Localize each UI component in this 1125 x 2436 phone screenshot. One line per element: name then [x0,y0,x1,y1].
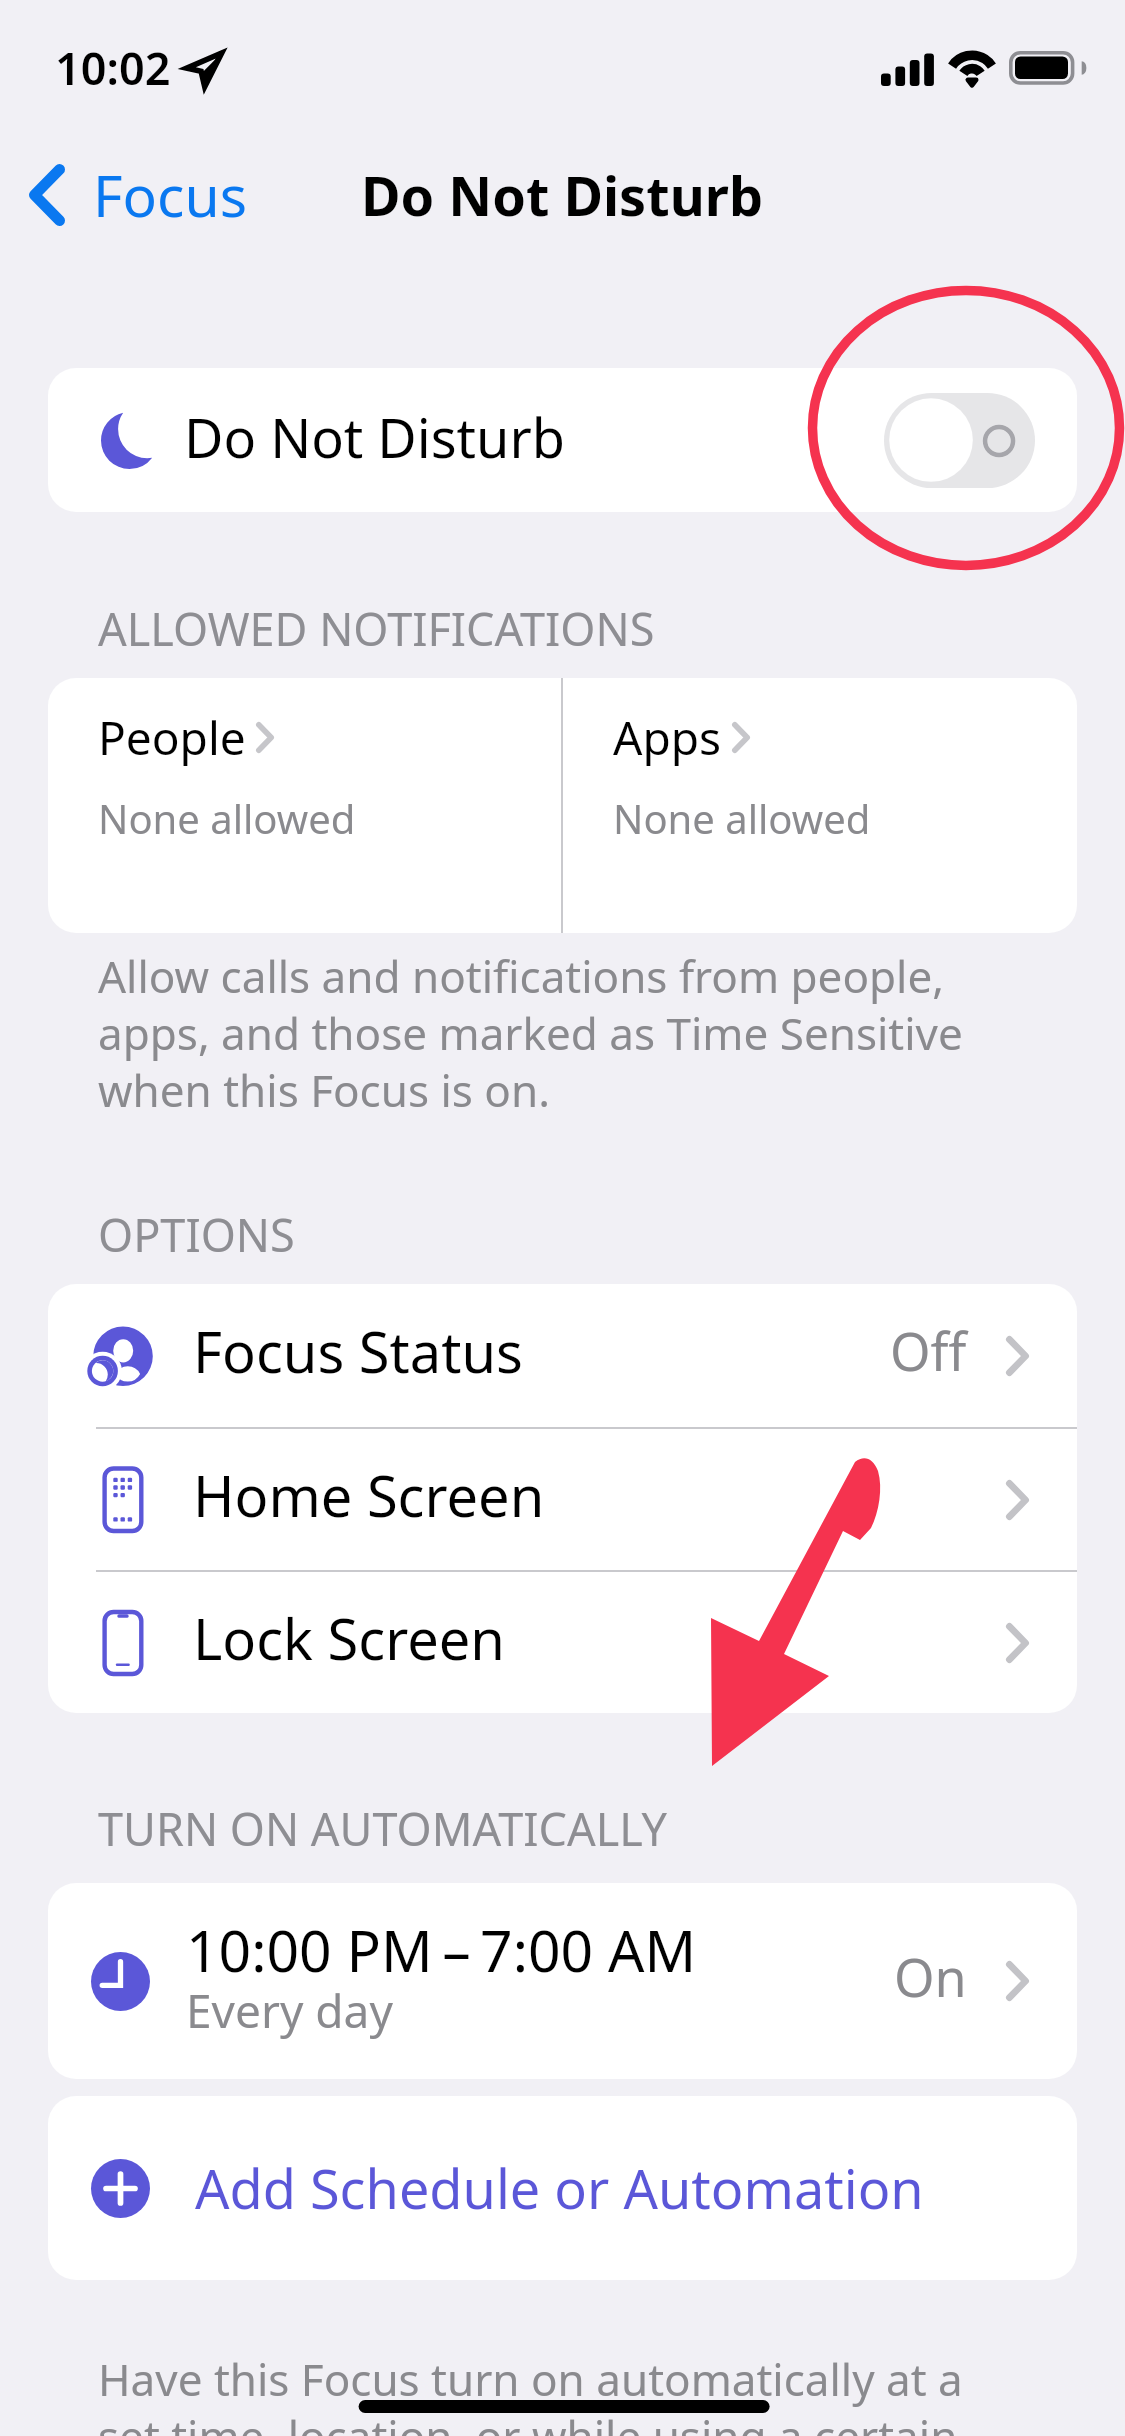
staticText: 10:02 [55,37,171,98]
button[interactable]: Lock Screen [48,1572,1077,1713]
staticText: Off [890,1315,967,1386]
staticText: OPTIONS [98,1204,295,1265]
button[interactable] [48,368,1077,512]
button[interactable]: Home Screen [48,1429,1077,1570]
staticText: Every day [186,1979,393,2042]
staticText: ALLOWED NOTIFICATIONS [98,598,655,659]
staticText: Have this Focus turn on automatically at… [98,2349,998,2436]
staticText: None allowed [613,791,871,845]
staticText: Do Not Disturb [361,158,764,232]
staticText: TURN ON AUTOMATICALLY [98,1798,667,1859]
button[interactable]: 10:00 PM – 7:00 AM [48,1883,1077,2079]
button[interactable]: Focus Status [48,1284,1077,1427]
staticText: Focus Status [193,1313,523,1389]
staticText: 10:00 PM – 7:00 AM [186,1911,697,1989]
staticText: People [98,706,246,769]
staticText: Lock Screen [193,1600,505,1676]
staticText: Allow calls and notifications from peopl… [98,946,998,1120]
button[interactable]: People [48,678,561,933]
staticText: Home Screen [193,1457,545,1533]
staticText: On [894,1941,967,2012]
button[interactable]: Add Schedule or Automation [48,2096,1077,2280]
button[interactable]: Do Not Disturb toggle [884,393,1035,488]
staticText: None allowed [98,791,356,845]
button[interactable]: Apps [563,678,1077,933]
staticText: Do Not Disturb [184,400,565,474]
staticText: Focus [93,156,247,234]
staticText: Apps [613,706,722,769]
staticText: Add Schedule or Automation [195,2151,924,2225]
button[interactable]: Focus [0,148,265,242]
